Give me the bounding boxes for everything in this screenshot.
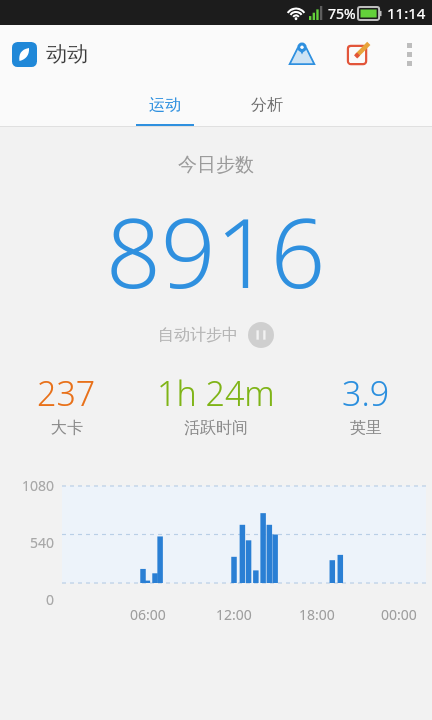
button[interactable]: 1h 24m (133, 370, 299, 438)
button[interactable]: 3.9 (299, 370, 432, 438)
button[interactable]: More options (386, 31, 432, 77)
staticText: 自动计步中 (158, 325, 238, 345)
button[interactable]: 运动 (126, 83, 204, 127)
staticText: 11:14 (387, 3, 426, 23)
button[interactable]: Map (274, 26, 330, 82)
staticText: 1080 (21, 476, 54, 495)
staticText: 8916 (106, 185, 326, 316)
staticText: 3.9 (342, 370, 390, 416)
staticText: 英里 (350, 418, 382, 438)
button[interactable]: Edit (330, 26, 386, 82)
staticText: 0 (45, 590, 54, 609)
staticText: 分析 (251, 95, 283, 115)
button[interactable]: 自动计步中 (158, 322, 274, 348)
staticText: 18:00 (299, 605, 335, 624)
staticText: 540 (29, 533, 54, 552)
staticText: 1h 24m (157, 370, 275, 416)
staticText: 今日步数 (178, 153, 254, 177)
staticText: 06:00 (130, 605, 166, 624)
button[interactable]: 动动 (12, 41, 88, 67)
staticText: 75% (328, 4, 356, 23)
staticText: 237 (37, 370, 96, 416)
button[interactable]: 分析 (228, 83, 306, 127)
button[interactable]: 237 (0, 370, 133, 438)
staticText: 活跃时间 (184, 418, 248, 438)
staticText: 运动 (149, 95, 181, 115)
staticText: 00:00 (381, 605, 417, 624)
staticText: 动动 (46, 41, 88, 67)
staticText: 12:00 (216, 605, 252, 624)
staticText: 大卡 (51, 418, 83, 438)
